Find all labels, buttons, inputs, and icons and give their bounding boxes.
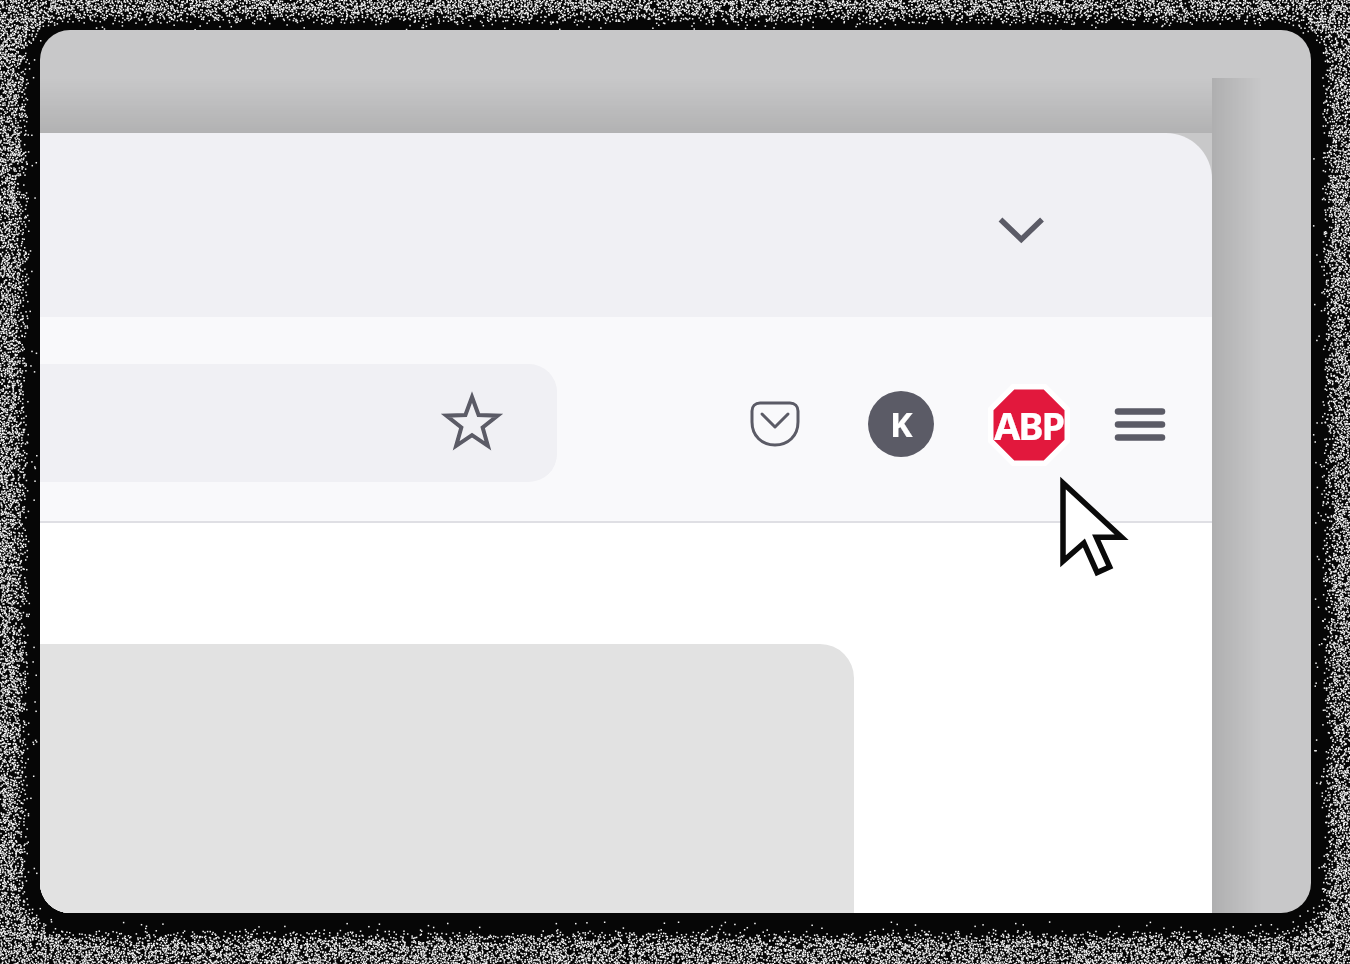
button[interactable]: [444, 396, 500, 452]
button[interactable]: [995, 213, 1047, 247]
staticText: K: [890, 401, 913, 447]
button[interactable]: [1112, 403, 1168, 445]
button[interactable]: [40, 364, 557, 482]
staticText: ABP: [994, 399, 1064, 451]
button[interactable]: ABP: [987, 383, 1071, 467]
button[interactable]: K: [868, 391, 934, 457]
